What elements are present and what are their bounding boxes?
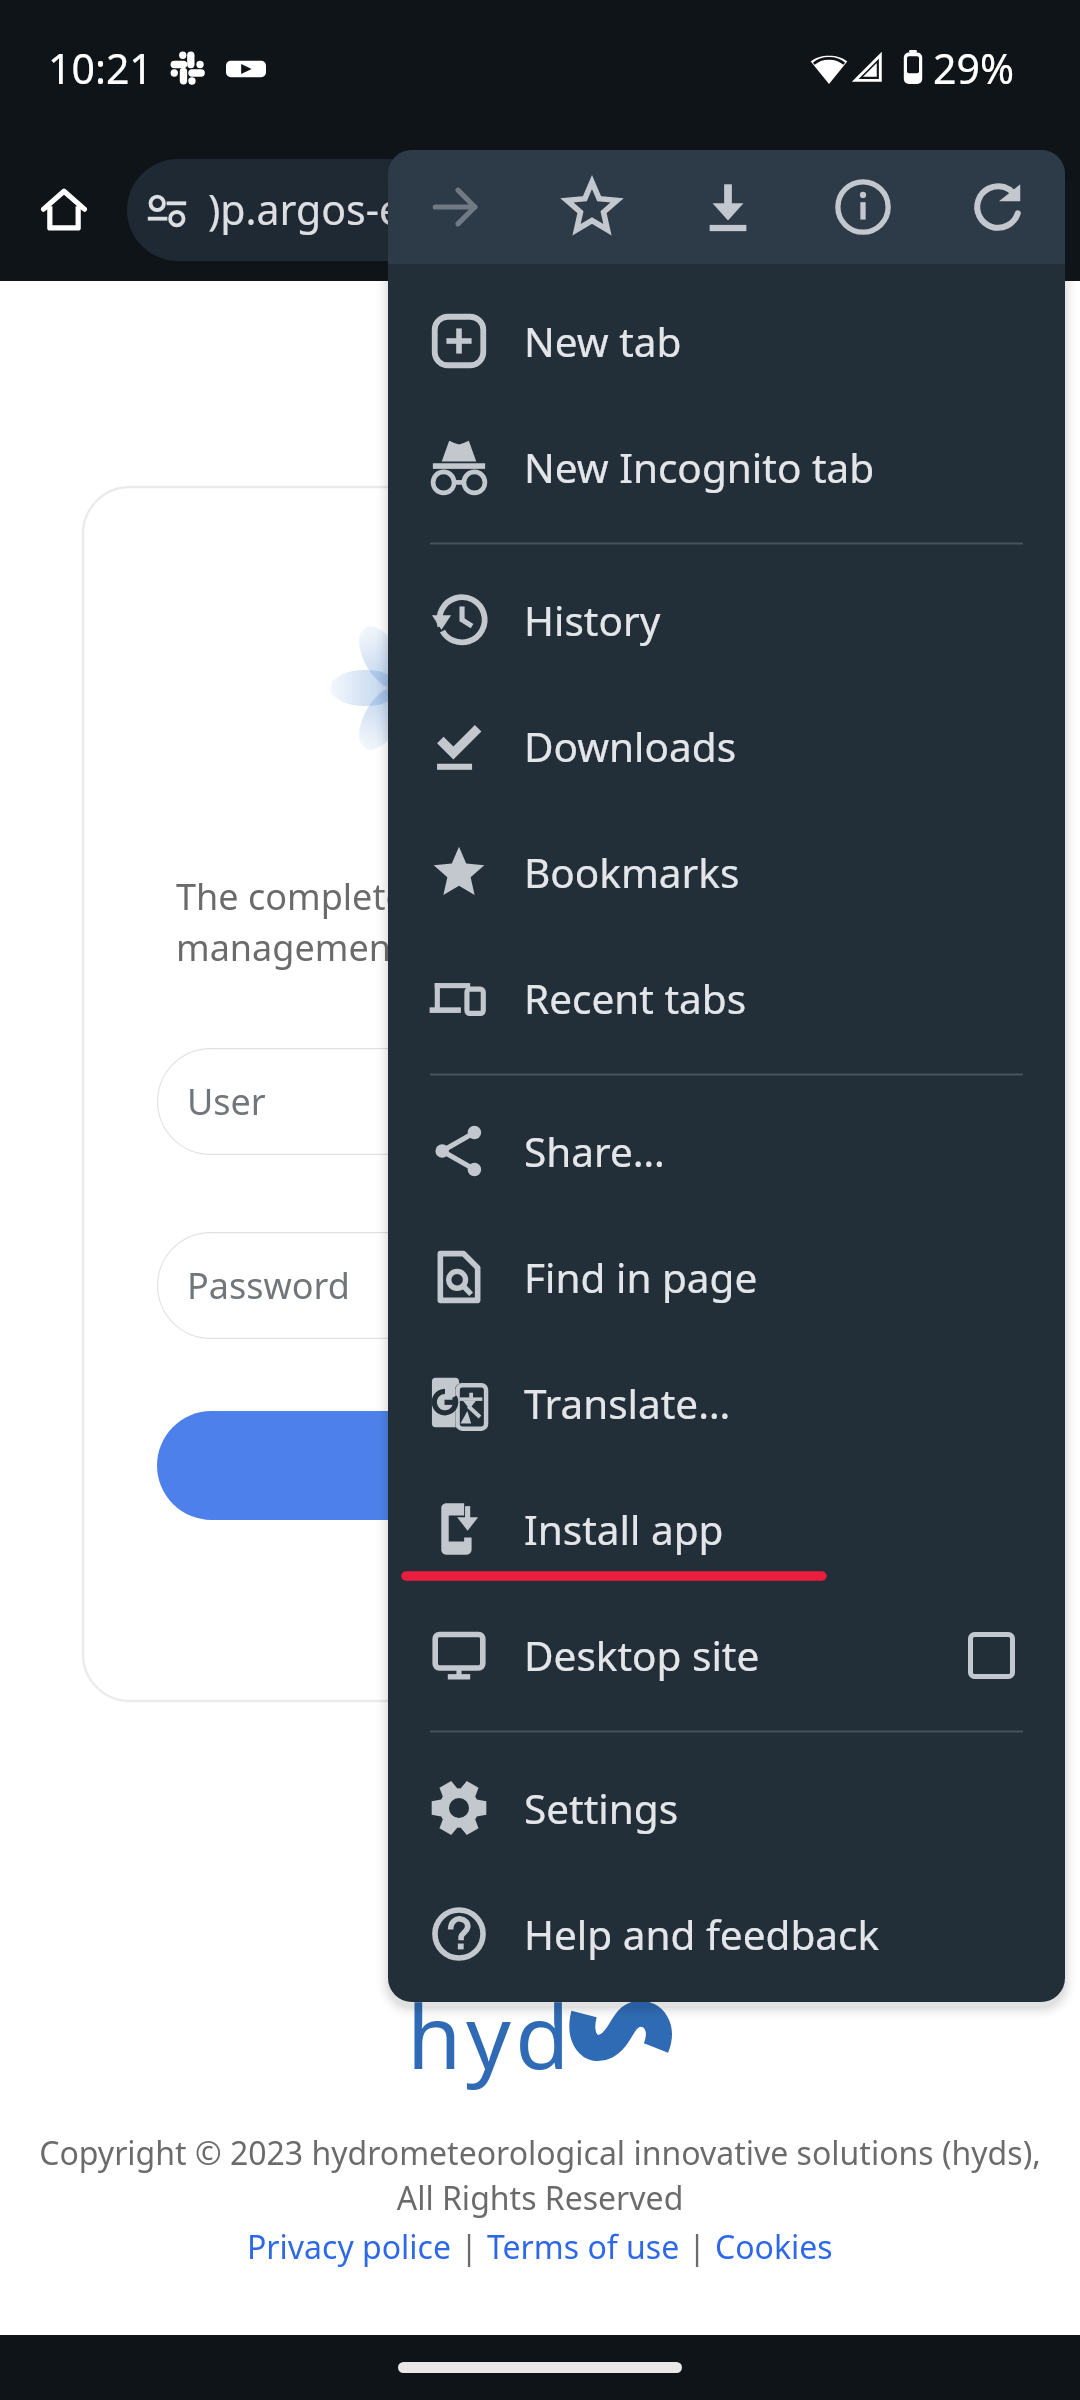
button[interactable]: Log in [157,1411,927,1520]
staticText: Downloads [524,719,737,774]
button[interactable]: Share… [388,1088,1065,1214]
button[interactable]: Page info [795,150,930,264]
staticText: Settings [524,1781,679,1836]
button[interactable]: Privacy police [247,2225,452,2269]
button[interactable]: Settings [388,1745,1065,1871]
button[interactable]: Bookmarks [388,809,1065,935]
staticText: hyd [407,1975,574,2095]
staticText: | [452,2225,487,2269]
staticText: The complete solution for the management… [176,872,956,971]
button[interactable]: Forward [388,150,524,264]
staticText: Password [187,1261,350,1310]
staticText: Share… [524,1124,665,1179]
button[interactable]: Downloads [388,683,1065,809]
staticText: Copyright © 2023 hydrometeorological inn… [0,2131,1080,2220]
button[interactable]: Password [157,1232,927,1339]
button[interactable]: New tab [388,278,1065,404]
button[interactable]: Translate… [388,1340,1065,1466]
button[interactable]: History [388,557,1065,683]
staticText: Recent tabs [524,971,747,1026]
staticText: History [524,593,661,648]
staticText: | [680,2225,715,2269]
staticText: Install app [524,1502,724,1557]
staticText: Desktop site [524,1628,760,1683]
button[interactable]: Bookmark this page [524,150,660,264]
button[interactable]: Find in page [388,1214,1065,1340]
staticText: New Incognito tab [524,440,875,495]
staticText: New tab [524,314,682,369]
staticText: Bookmarks [524,845,740,900]
button[interactable]: Home [39,185,89,235]
staticText: Translate… [524,1376,731,1431]
button[interactable]: Cookies [715,2225,833,2269]
button[interactable]: Reload [930,150,1065,264]
button[interactable]: Recent tabs [388,935,1065,1061]
staticText: 10:21 [48,40,153,96]
staticText: 29% [933,40,1014,96]
button[interactable]: New Incognito tab [388,404,1065,530]
button[interactable]: User [157,1048,927,1155]
staticText: User [187,1077,266,1126]
staticText: Find in page [524,1250,758,1305]
button[interactable]: Download page [660,150,795,264]
button[interactable]: Help and feedback [388,1871,1065,1997]
staticText: Help and feedback [524,1907,880,1962]
button[interactable]: Terms of use [487,2225,680,2269]
staticText: )p.argos-e [208,181,403,237]
button[interactable]: Search or type URL [127,159,827,261]
button[interactable]: Install app [388,1466,1065,1592]
button[interactable]: Desktop site [388,1592,1065,1718]
